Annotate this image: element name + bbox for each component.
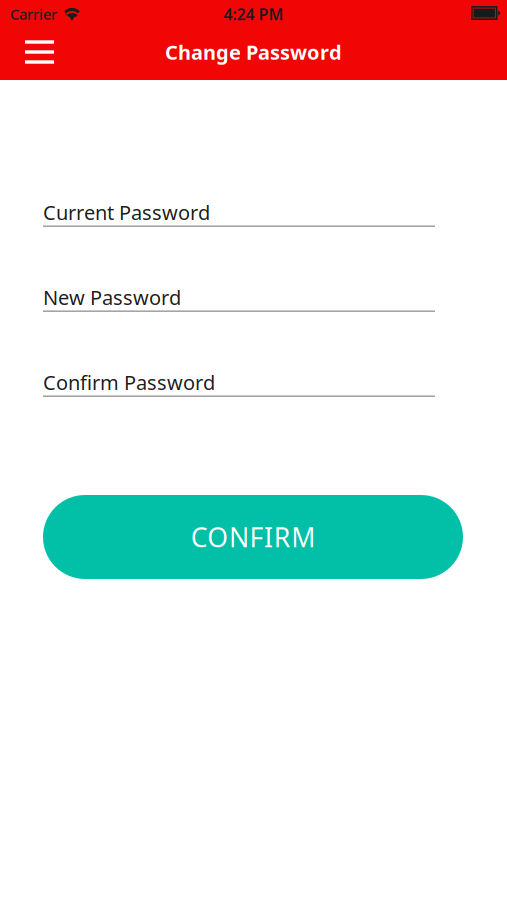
staticText: 4:24 PM [223,3,283,25]
button[interactable]: New Password [43,270,435,312]
staticText: Current Password [43,199,210,225]
button[interactable]: CONFIRM [43,495,463,579]
staticText: Carrier [10,4,57,24]
staticText: Confirm Password [43,369,215,395]
staticText: CONFIRM [191,519,315,555]
button[interactable]: Current Password [43,185,435,227]
staticText: New Password [43,284,181,310]
staticText: Change Password [165,39,342,65]
button[interactable]: Menu [0,29,70,79]
button[interactable]: Confirm Password [43,355,435,397]
